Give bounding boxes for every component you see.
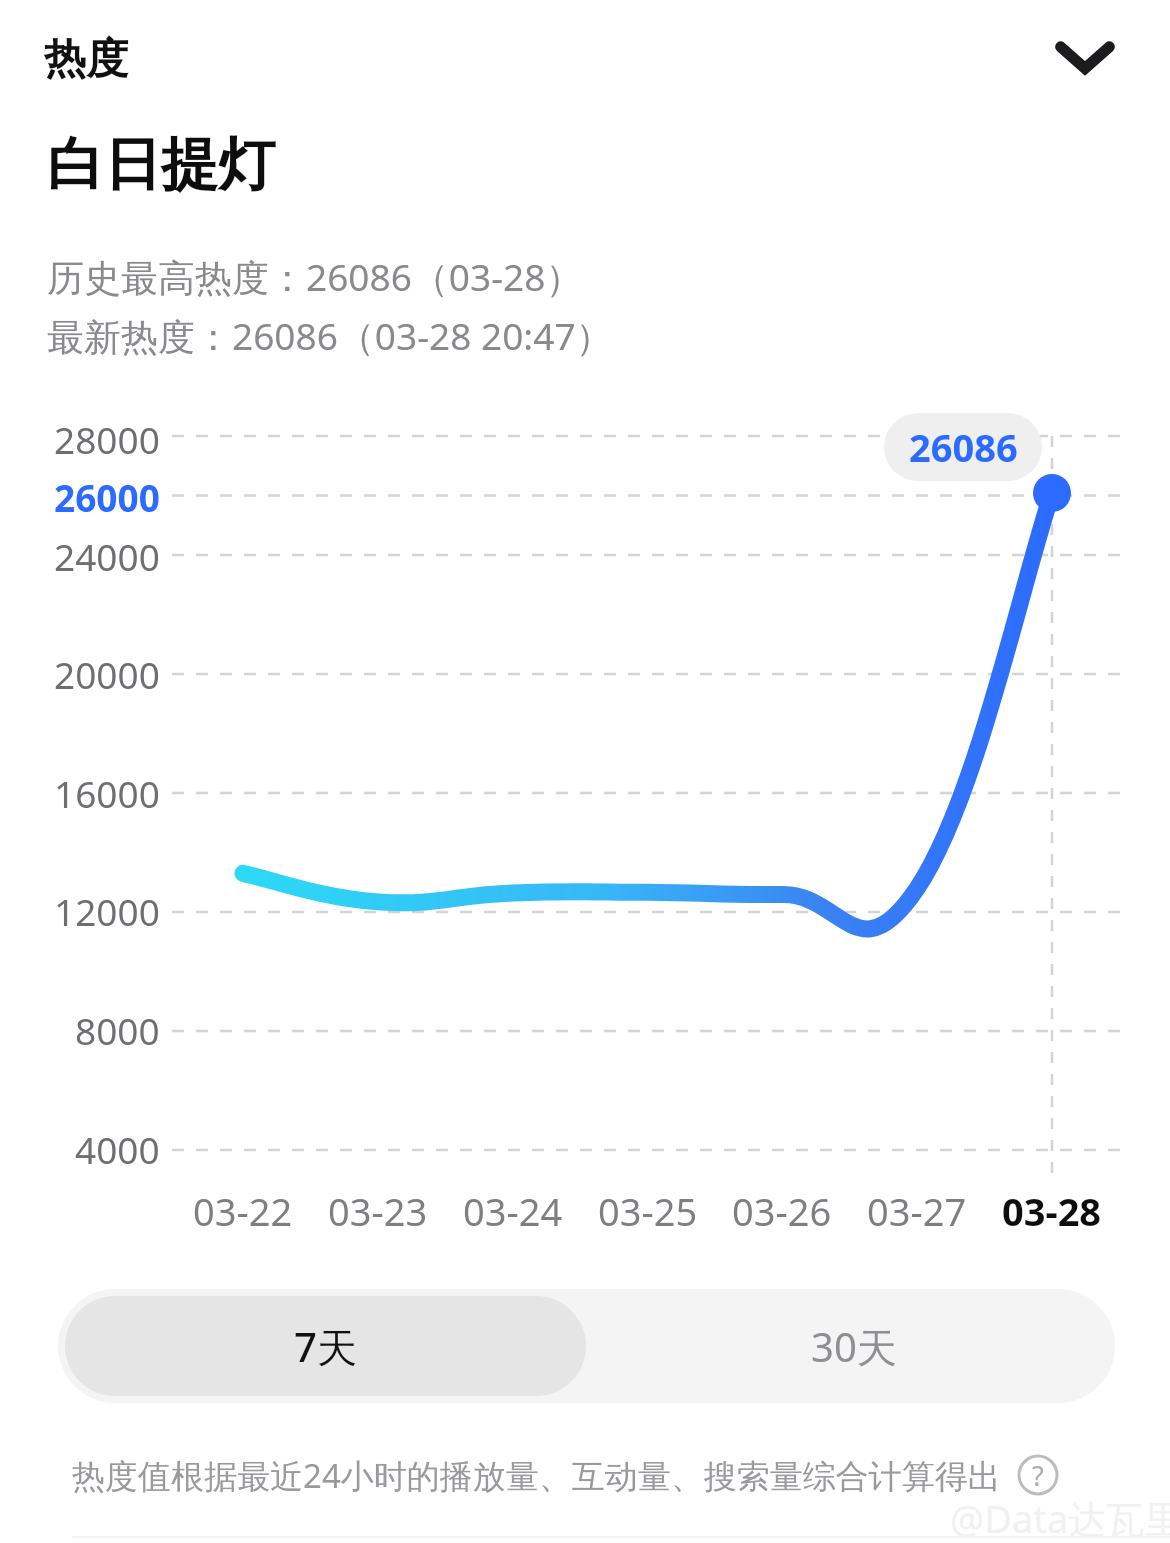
staticText: 8000 bbox=[75, 1005, 160, 1055]
staticText: 30天 bbox=[811, 1319, 897, 1374]
button[interactable]: Help bbox=[1015, 1452, 1061, 1498]
staticText: ? bbox=[1032, 1457, 1044, 1494]
button[interactable]: Collapse bbox=[1030, 14, 1140, 102]
staticText: 16000 bbox=[54, 768, 160, 818]
staticText: 12000 bbox=[54, 886, 160, 936]
staticText: 03-26 bbox=[732, 1185, 832, 1237]
staticText: 热度 bbox=[44, 33, 128, 86]
staticText: 03-24 bbox=[463, 1185, 563, 1237]
staticText: 03-27 bbox=[867, 1185, 967, 1237]
staticText: 历史最高热度：26086（03-28） bbox=[47, 251, 583, 302]
staticText: 4000 bbox=[75, 1124, 160, 1174]
staticText: 白日提灯 bbox=[47, 129, 275, 201]
staticText: 03-23 bbox=[328, 1185, 428, 1237]
staticText: 20000 bbox=[54, 649, 160, 699]
staticText: 28000 bbox=[54, 414, 160, 464]
staticText: 26000 bbox=[54, 472, 160, 522]
staticText: 03-25 bbox=[598, 1185, 698, 1237]
staticText: 7天 bbox=[294, 1319, 357, 1374]
button[interactable]: 30天 bbox=[593, 1289, 1115, 1403]
staticText: 24000 bbox=[54, 531, 160, 581]
staticText: 热度值根据最近24小时的播放量、互动量、搜索量综合计算得出 bbox=[72, 1453, 1001, 1498]
staticText: @Data达瓦里氏 bbox=[950, 1492, 1170, 1543]
staticText: 03-22 bbox=[193, 1185, 293, 1237]
button[interactable]: 7天 bbox=[65, 1296, 586, 1396]
staticText: 26086 bbox=[909, 421, 1018, 473]
staticText: 最新热度：26086（03-28 20:47） bbox=[47, 310, 613, 361]
staticText: 03-28 bbox=[1002, 1185, 1102, 1237]
